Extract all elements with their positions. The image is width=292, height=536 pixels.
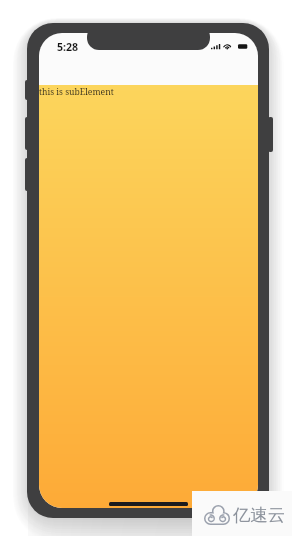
button[interactable]: Home — [109, 502, 188, 506]
button[interactable]: Volume up — [25, 117, 29, 150]
button[interactable]: Silent switch — [25, 80, 29, 100]
button[interactable]: Power — [268, 117, 273, 152]
button[interactable]: this is subElement — [39, 85, 258, 508]
other: Signal, Wi-Fi and battery status — [211, 42, 251, 52]
staticText: 亿速云 — [233, 504, 286, 526]
button[interactable]: Yisuyun watermark — [192, 491, 292, 536]
button[interactable]: Volume down — [25, 158, 29, 191]
staticText: 5:28 — [57, 40, 79, 54]
staticText: this is subElement — [39, 86, 114, 98]
